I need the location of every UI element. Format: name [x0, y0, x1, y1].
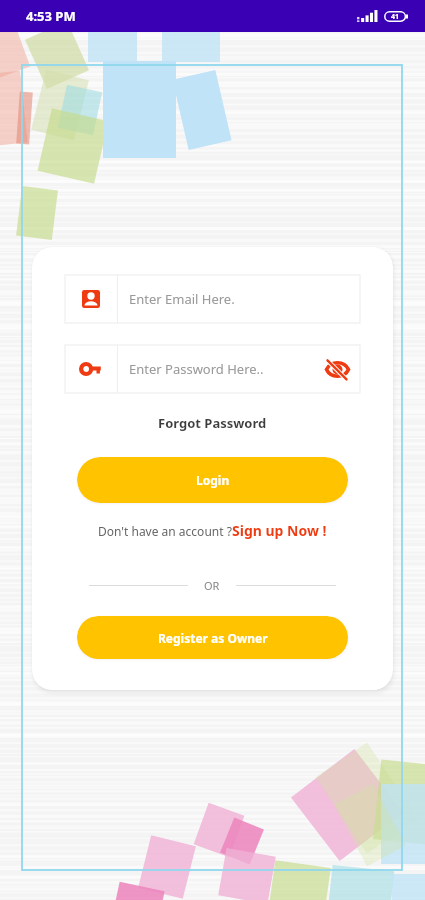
- button[interactable]: Toggle password visibility: [314, 345, 360, 393]
- staticText: OR: [204, 578, 220, 593]
- staticText: Enter Email Here.: [129, 290, 235, 308]
- staticText: Don't have an account ?: [98, 523, 232, 539]
- staticText: Login: [196, 472, 230, 488]
- staticText: Register as Owner: [158, 630, 268, 646]
- button[interactable]: Register as Owner: [77, 616, 348, 659]
- staticText: Enter Password Here..: [129, 360, 264, 378]
- staticText: 4:53 PM: [26, 7, 76, 25]
- button[interactable]: Sign up Now !: [232, 521, 327, 540]
- staticText: 41: [391, 12, 400, 22]
- button[interactable]: Forgot Password: [152, 410, 273, 436]
- button[interactable]: Login: [77, 457, 348, 503]
